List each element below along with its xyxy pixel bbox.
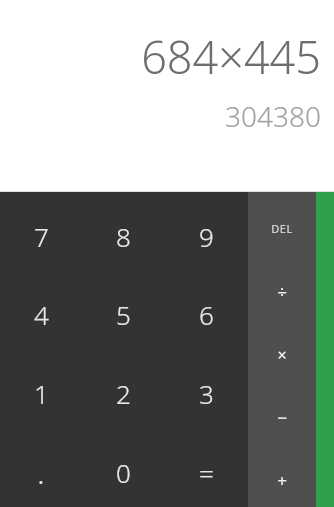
button[interactable]: = (165, 433, 248, 507)
staticText: 7 (34, 219, 49, 254)
button[interactable]: 1 (0, 354, 82, 433)
staticText: 8 (116, 219, 131, 254)
staticText: 6 (199, 297, 214, 332)
button[interactable]: DEL (248, 197, 316, 260)
staticText: 3 (199, 376, 214, 411)
staticText: 304380 (225, 97, 321, 135)
staticText: = (199, 455, 214, 490)
button[interactable]: 5 (82, 275, 165, 354)
button[interactable]: 8 (82, 197, 165, 275)
button[interactable]: 3 (165, 354, 248, 433)
button[interactable]: 9 (165, 197, 248, 275)
staticText: 4 (34, 297, 49, 332)
button[interactable]: Multiply (248, 323, 316, 386)
staticText: × (277, 344, 287, 366)
staticText: + (277, 469, 287, 492)
button[interactable]: Add (248, 449, 316, 507)
staticText: 0 (116, 455, 131, 490)
button[interactable]: . (0, 433, 82, 507)
staticText: . (37, 452, 45, 493)
button[interactable]: 6 (165, 275, 248, 354)
staticText: − (277, 406, 287, 429)
button[interactable]: 2 (82, 354, 165, 433)
button[interactable]: Divide (248, 260, 316, 323)
button[interactable]: 4 (0, 275, 82, 354)
staticText: 9 (199, 219, 214, 254)
staticText: 1 (34, 376, 49, 411)
button[interactable]: 7 (0, 197, 82, 275)
staticText: DEL (271, 221, 293, 236)
staticText: 684×445 (141, 26, 321, 87)
staticText: 2 (116, 376, 131, 411)
staticText: ÷ (277, 280, 287, 303)
button[interactable]: Subtract (248, 386, 316, 449)
staticText: 5 (116, 297, 131, 332)
button[interactable]: 0 (82, 433, 165, 507)
